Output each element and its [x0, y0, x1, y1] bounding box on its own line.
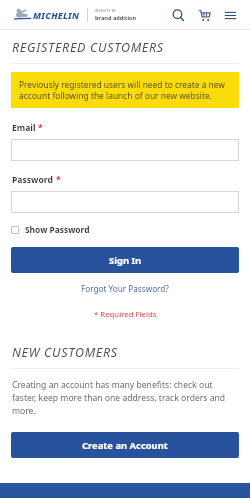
button[interactable]: Create an Account: [11, 432, 239, 458]
button[interactable]: Show Password: [11, 224, 90, 235]
button[interactable]: Forgot Your Password?: [75, 280, 175, 297]
staticText: Sign In: [109, 254, 142, 267]
staticText: Create an Account: [82, 439, 168, 452]
staticText: WEBSITE BY: [95, 8, 117, 13]
staticText: Show Password: [25, 224, 90, 235]
button[interactable]: [11, 191, 239, 213]
staticText: REGISTERED CUSTOMERS: [12, 39, 164, 56]
button[interactable]: [11, 139, 239, 161]
staticText: Email: [12, 122, 36, 134]
staticText: *: [56, 174, 61, 186]
staticText: Previously registered users will need to…: [19, 79, 231, 101]
staticText: *: [38, 122, 43, 134]
staticText: brand addition: [95, 14, 137, 22]
staticText: NEW CUSTOMERS: [12, 344, 118, 361]
staticText: MICHELIN: [33, 9, 80, 21]
button[interactable]: Menu: [218, 3, 242, 27]
staticText: Password: [12, 174, 53, 186]
button[interactable]: Shopping cart: [192, 3, 216, 27]
button[interactable]: Sign In: [11, 247, 239, 273]
button[interactable]: Search: [166, 3, 190, 27]
staticText: * Required Fields: [94, 309, 157, 320]
staticText: Creating an account has many benefits: c…: [12, 379, 238, 416]
staticText: Forgot Your Password?: [81, 283, 169, 294]
